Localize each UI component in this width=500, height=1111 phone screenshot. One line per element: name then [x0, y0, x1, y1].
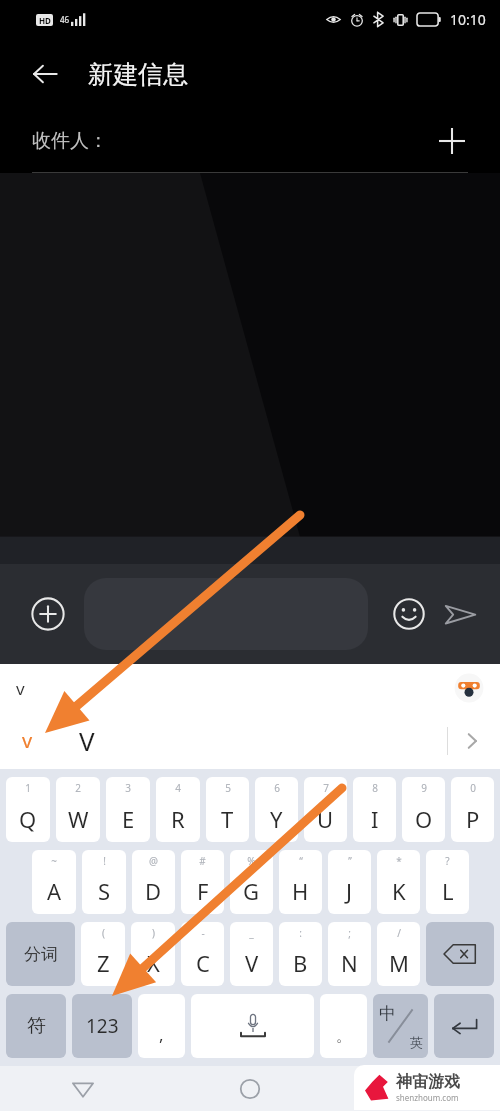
button[interactable]: ~: [32, 850, 76, 914]
button[interactable]: Backspace: [426, 922, 494, 986]
staticText: Y: [270, 804, 283, 834]
button[interactable]: %: [230, 850, 273, 914]
button[interactable]: Add attachment: [24, 590, 72, 638]
button[interactable]: 3: [106, 777, 150, 842]
button[interactable]: 。: [320, 994, 367, 1058]
staticText: /: [397, 926, 401, 940]
staticText: 0: [470, 781, 476, 795]
staticText: O: [415, 804, 433, 834]
staticText: ”: [348, 854, 352, 868]
staticText: 7: [323, 781, 329, 795]
button[interactable]: 9: [402, 777, 445, 842]
button[interactable]: 收件人：: [0, 110, 500, 172]
staticText: @: [149, 854, 158, 868]
staticText: -: [201, 926, 205, 940]
staticText: 神宙游戏: [396, 1072, 460, 1092]
staticText: 。: [336, 1027, 351, 1046]
staticText: _: [249, 926, 254, 940]
button[interactable]: ;: [328, 922, 371, 986]
button[interactable]: More candidates: [454, 723, 490, 759]
button[interactable]: 符: [6, 994, 66, 1058]
staticText: “: [299, 854, 303, 868]
button[interactable]: [84, 578, 368, 650]
button[interactable]: Switch language: [373, 994, 428, 1058]
button[interactable]: 0: [451, 777, 494, 842]
button[interactable]: 5: [206, 777, 249, 842]
staticText: shenzhoum.com: [396, 1092, 459, 1103]
button[interactable]: (: [81, 922, 125, 986]
button[interactable]: 6: [255, 777, 298, 842]
staticText: 3: [125, 781, 131, 795]
button[interactable]: 8: [353, 777, 396, 842]
staticText: 符: [27, 1014, 46, 1038]
button[interactable]: Space: [191, 994, 314, 1058]
button[interactable]: “: [279, 850, 322, 914]
staticText: V: [79, 723, 95, 758]
staticText: 2: [75, 781, 81, 795]
staticText: 9: [421, 781, 427, 795]
button[interactable]: @: [132, 850, 175, 914]
button[interactable]: 4: [156, 777, 200, 842]
staticText: T: [221, 804, 234, 834]
button[interactable]: Add recipient: [432, 121, 472, 161]
button[interactable]: 2: [56, 777, 100, 842]
staticText: %: [247, 854, 256, 868]
button[interactable]: Back: [0, 1066, 166, 1111]
button[interactable]: Home: [166, 1066, 333, 1111]
button[interactable]: V: [75, 717, 99, 764]
button[interactable]: ?: [426, 850, 469, 914]
staticText: 中: [379, 1003, 396, 1024]
staticText: 收件人：: [32, 129, 108, 153]
staticText: F: [197, 876, 209, 906]
button[interactable]: Enter: [434, 994, 494, 1058]
button[interactable]: 7: [304, 777, 347, 842]
staticText: R: [171, 804, 185, 834]
staticText: M: [389, 948, 409, 978]
staticText: K: [392, 876, 406, 906]
staticText: ;: [348, 926, 351, 940]
button[interactable]: 1: [6, 777, 50, 842]
button[interactable]: Emoji: [386, 591, 432, 637]
staticText: 8: [372, 781, 378, 795]
staticText: HD: [39, 15, 51, 26]
button[interactable]: 分词: [6, 922, 75, 986]
staticText: C: [196, 948, 210, 978]
staticText: N: [341, 948, 358, 978]
button[interactable]: ): [131, 922, 175, 986]
button[interactable]: Send: [436, 590, 484, 638]
button[interactable]: #: [181, 850, 224, 914]
staticText: B: [293, 948, 308, 978]
staticText: v: [22, 727, 33, 754]
staticText: 英: [410, 1034, 423, 1050]
staticText: ?: [445, 854, 450, 868]
staticText: L: [442, 876, 454, 906]
button[interactable]: *: [377, 850, 420, 914]
button[interactable]: Recents: [333, 1066, 500, 1111]
staticText: U: [317, 804, 334, 834]
button[interactable]: :: [279, 922, 322, 986]
button[interactable]: 123: [72, 994, 132, 1058]
staticText: Q: [19, 804, 37, 834]
staticText: W: [68, 804, 89, 834]
button[interactable]: Input method logo: [452, 671, 486, 705]
button[interactable]: ”: [328, 850, 371, 914]
button[interactable]: !: [82, 850, 126, 914]
button[interactable]: Back: [22, 51, 68, 97]
staticText: 分词: [24, 944, 58, 965]
button[interactable]: _: [230, 922, 273, 986]
staticText: 10:10: [450, 10, 486, 29]
button[interactable]: /: [377, 922, 420, 986]
button[interactable]: ,: [138, 994, 185, 1058]
staticText: D: [145, 876, 162, 906]
staticText: :: [299, 926, 302, 940]
staticText: *: [396, 854, 402, 868]
staticText: 新建信息: [88, 59, 188, 90]
button[interactable]: v: [18, 721, 37, 760]
button[interactable]: -: [181, 922, 224, 986]
staticText: 1: [25, 781, 31, 795]
staticText: (: [102, 926, 105, 940]
staticText: P: [466, 804, 480, 834]
staticText: 46: [60, 14, 70, 25]
staticText: ,: [159, 1023, 164, 1046]
staticText: #: [199, 854, 206, 868]
